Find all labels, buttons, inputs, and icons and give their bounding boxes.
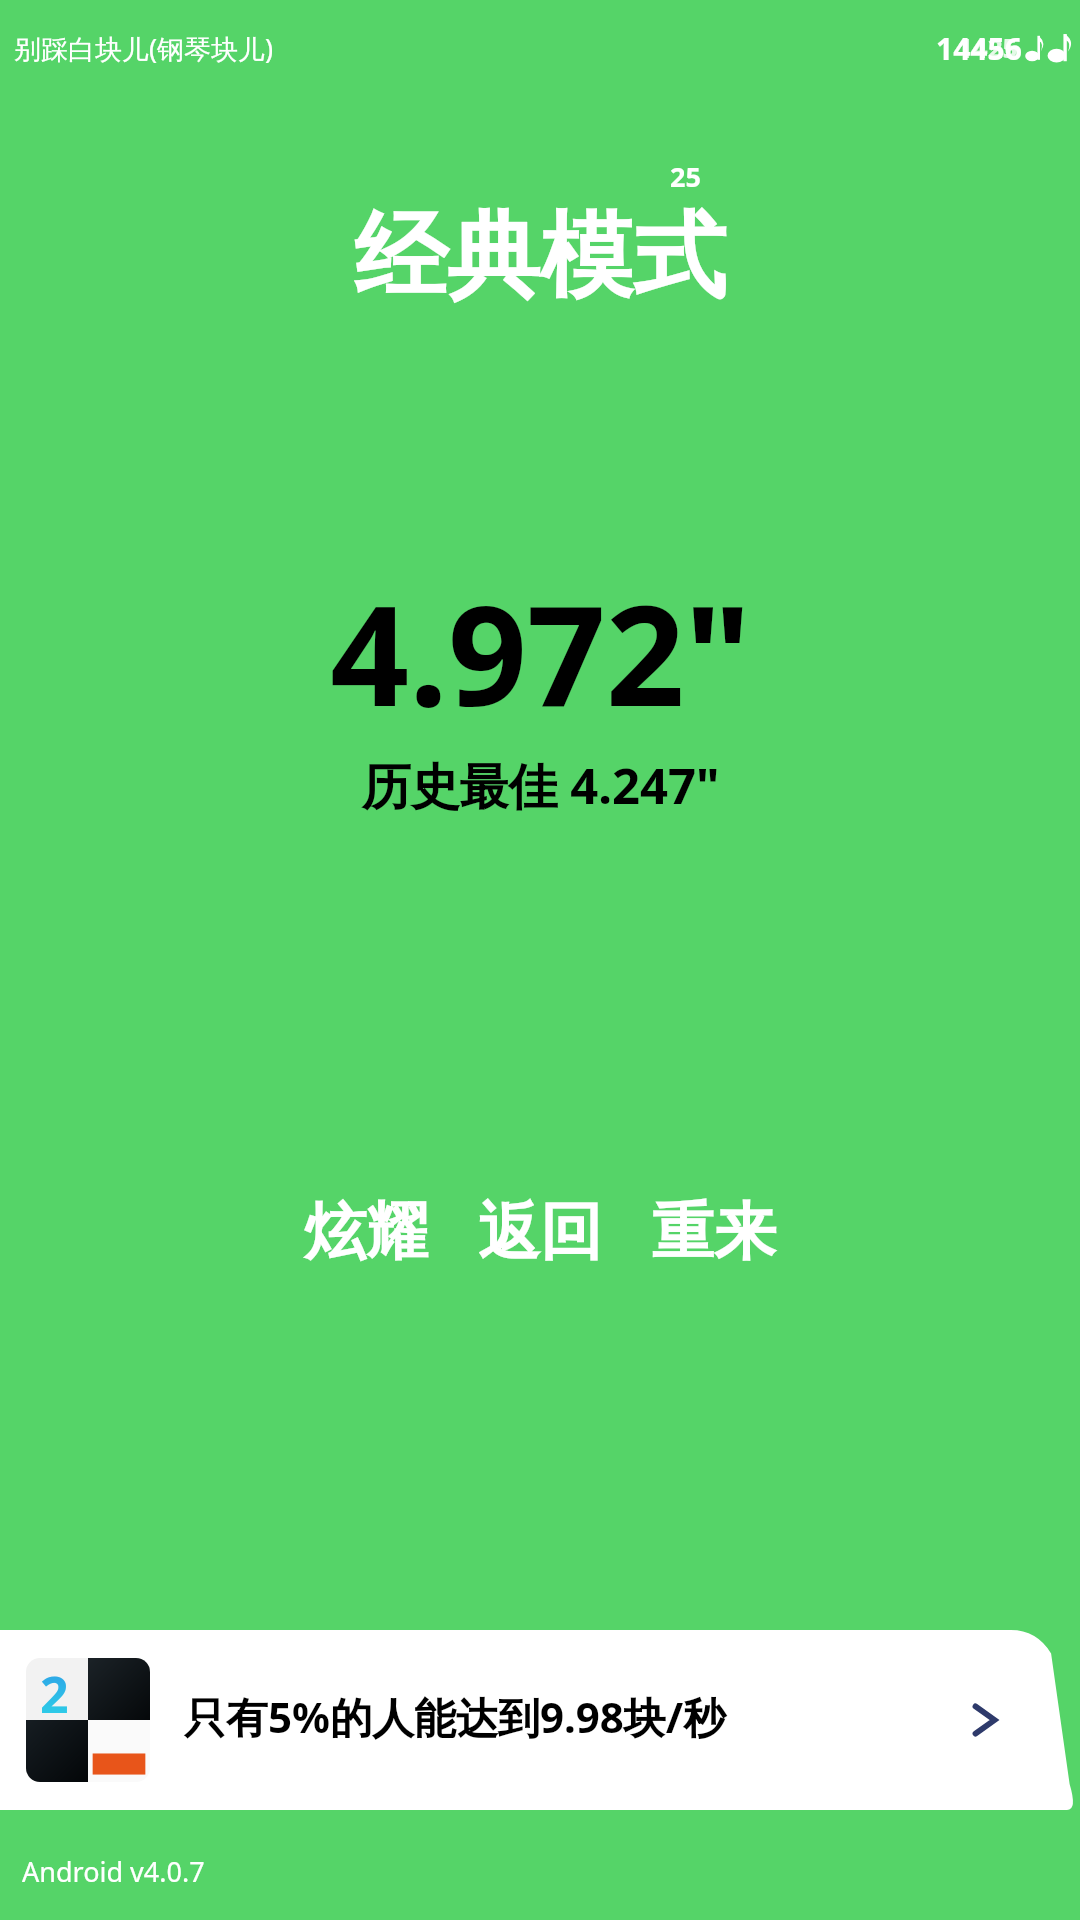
other: Music [1046, 32, 1072, 66]
staticText: 25 [670, 158, 701, 195]
staticText: 14456 [936, 28, 1022, 69]
staticText: 1425 [958, 30, 1018, 65]
staticText: 重来 [652, 1193, 776, 1271]
staticText: 经典模式 [354, 198, 726, 315]
other: Open advertisement [958, 1693, 1012, 1747]
other: Music [1024, 34, 1044, 64]
staticText: 炫耀 [304, 1193, 428, 1271]
staticText: Android v4.0.7 [22, 1853, 205, 1890]
staticText: 历史最佳 4.247" [361, 752, 720, 819]
staticText: 2 [40, 1660, 69, 1728]
button[interactable]: 2 [0, 1630, 1080, 1810]
staticText: 别踩白块儿(钢琴块儿) [14, 30, 274, 67]
staticText: 返回 [478, 1193, 602, 1271]
staticText: 只有5%的人能达到9.98块/秒 [184, 1688, 726, 1745]
button[interactable]: 返回 [468, 1185, 612, 1279]
button[interactable]: 重来 [642, 1185, 786, 1279]
button[interactable]: 炫耀 [294, 1185, 438, 1279]
staticText: 4.972" [330, 558, 751, 746]
